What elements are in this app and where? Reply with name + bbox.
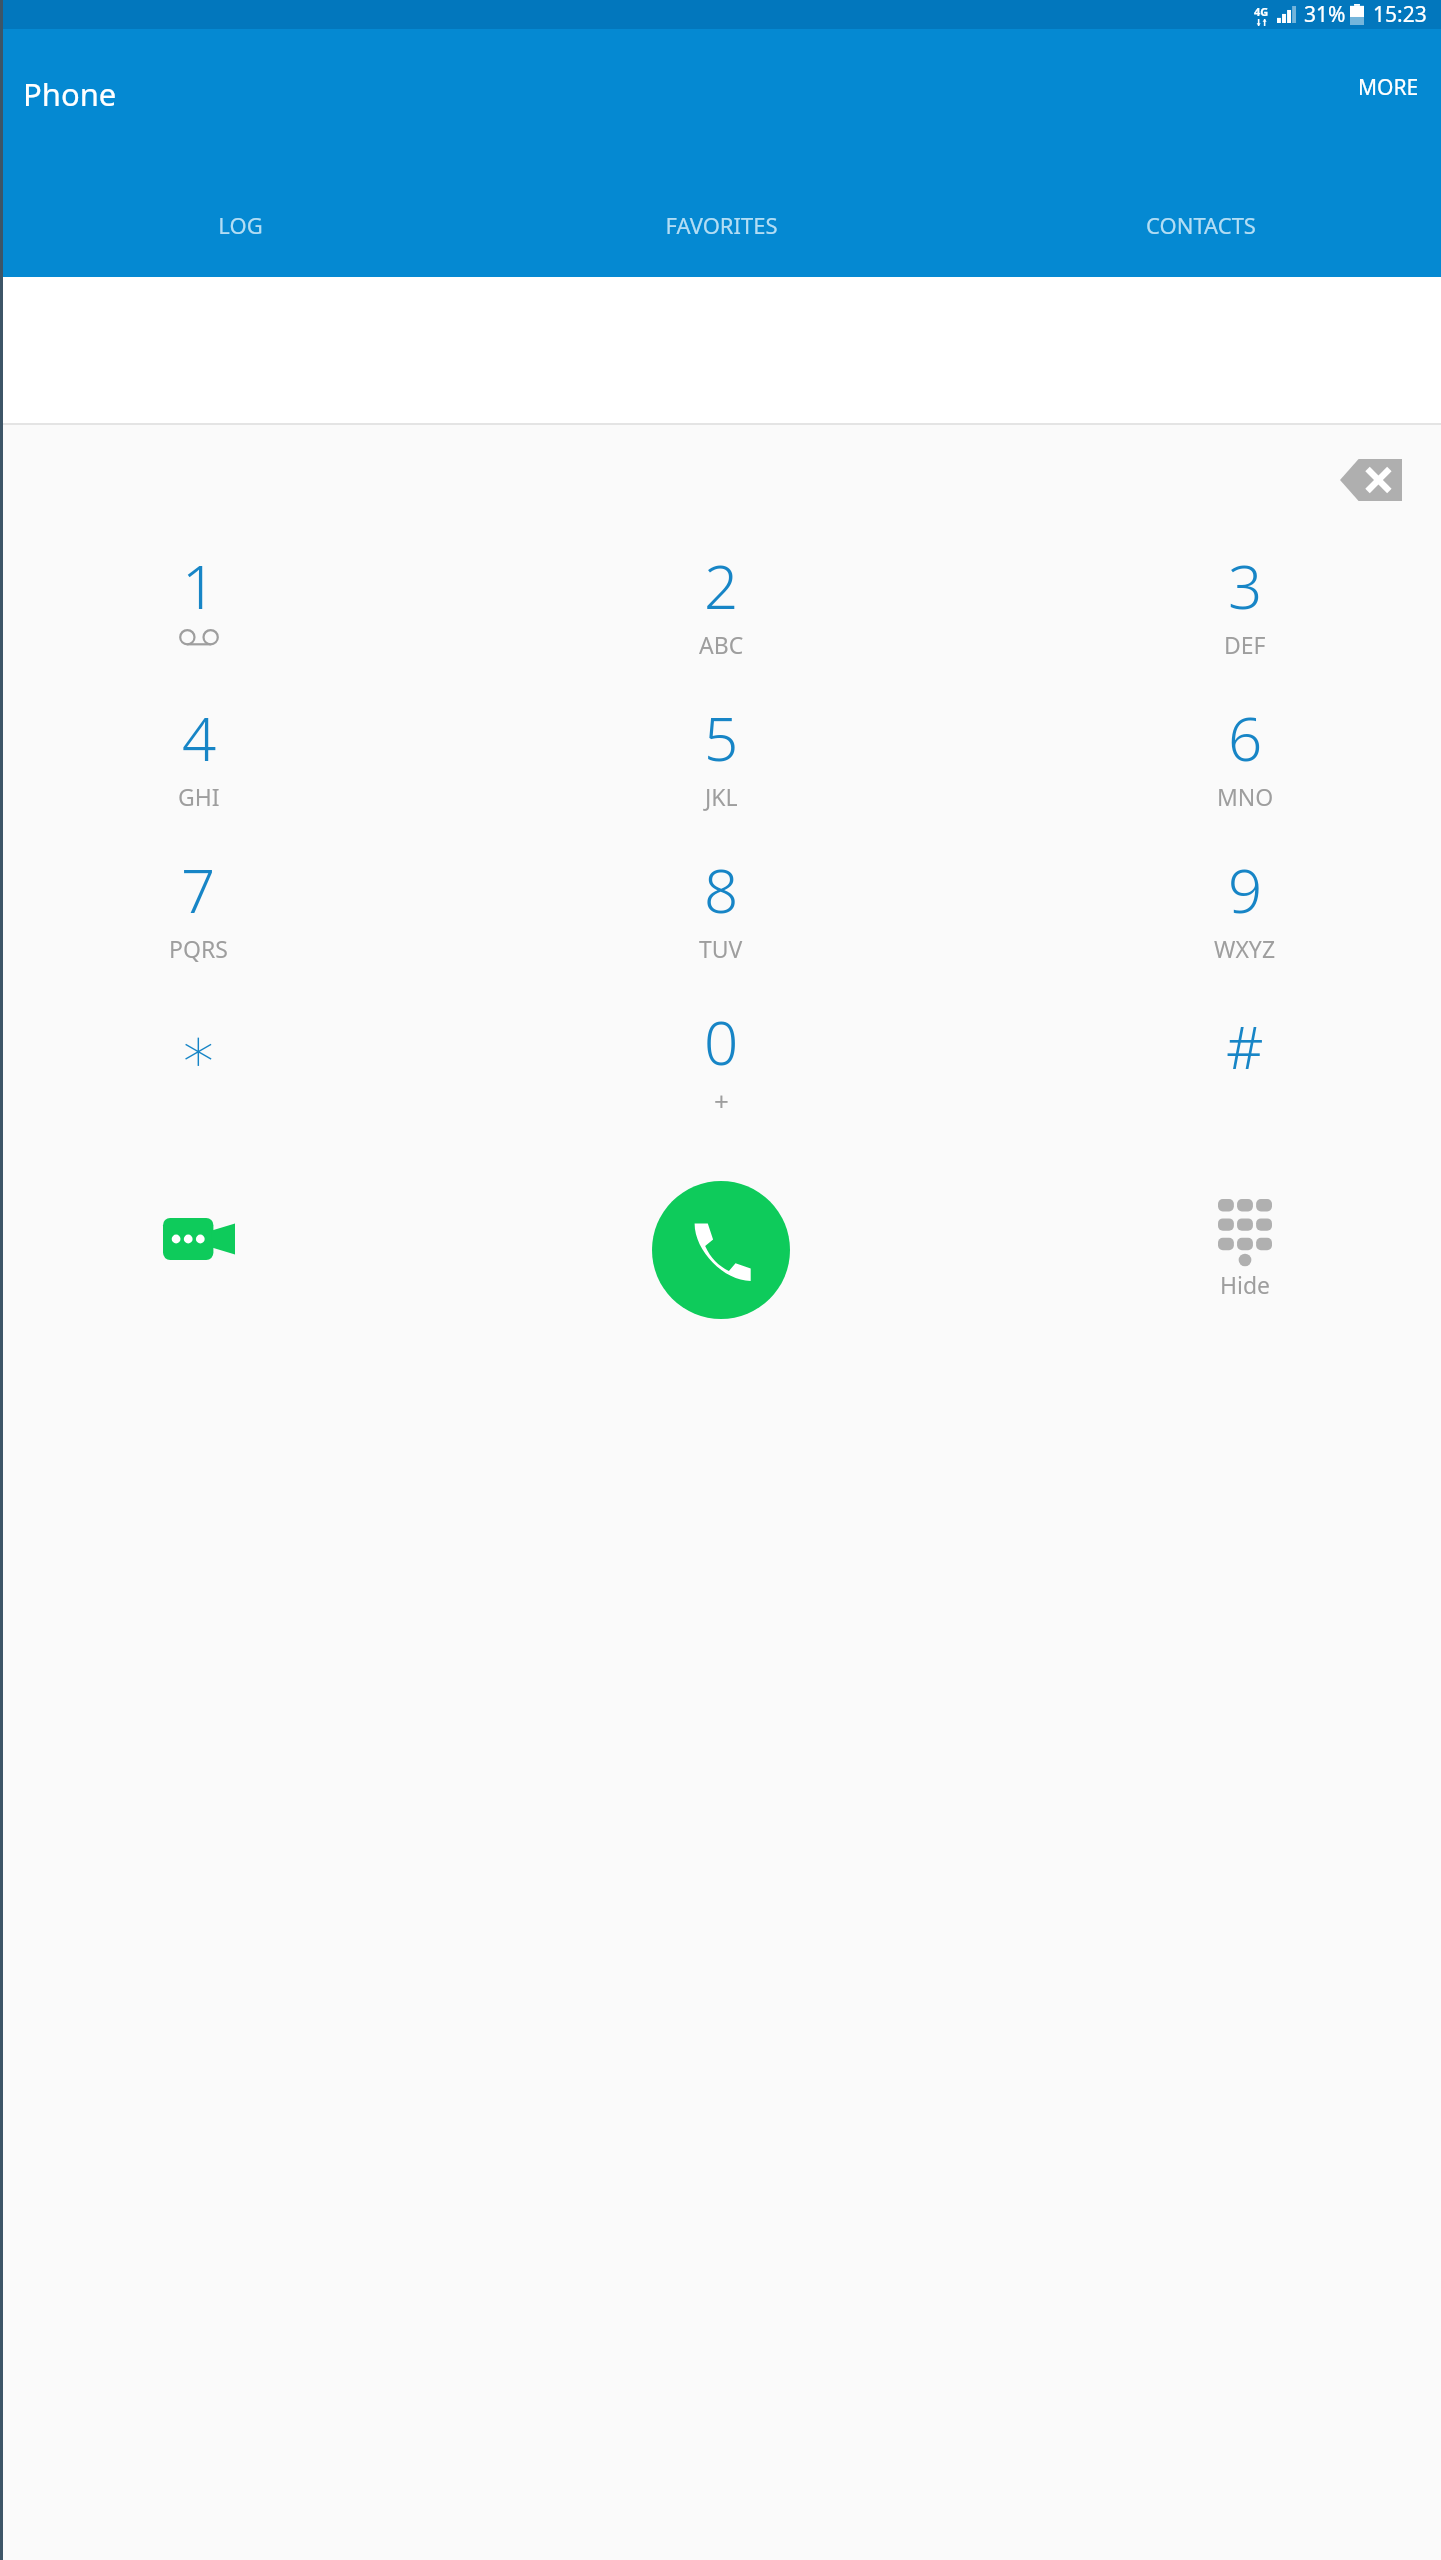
button[interactable]: 4 (0, 697, 481, 849)
button[interactable]: # (961, 1001, 1441, 1153)
staticText: LOG (218, 210, 263, 240)
staticText: 9 (1228, 849, 1263, 931)
button[interactable]: 6 (961, 697, 1441, 849)
button[interactable]: 9 (961, 849, 1441, 1001)
staticText: # (1226, 1007, 1264, 1086)
staticText: GHI (178, 781, 220, 812)
staticText: 6 (1228, 697, 1263, 779)
button[interactable]: MORE (1340, 59, 1441, 116)
staticText: 2 (704, 545, 739, 627)
staticText: MNO (1217, 781, 1274, 812)
staticText: TUV (699, 933, 743, 964)
button[interactable]: CONTACTS (961, 173, 1441, 277)
staticText: 5 (704, 697, 739, 779)
button[interactable]: 3 (961, 545, 1441, 697)
button[interactable]: Video call (159, 1211, 239, 1267)
button[interactable]: 5 (481, 697, 961, 849)
staticText: FAVORITES (665, 210, 778, 240)
staticText: PQRS (169, 933, 228, 964)
button[interactable]: Backspace (1323, 449, 1419, 511)
staticText: 31% (1304, 0, 1346, 29)
staticText: CONTACTS (1146, 210, 1256, 240)
staticText: Hide (1220, 1269, 1271, 1300)
staticText: 4 (182, 697, 217, 779)
staticText: ∗ (179, 1013, 218, 1085)
staticText: 8 (704, 849, 739, 931)
staticText: Phone (23, 73, 117, 115)
button[interactable]: 1 (0, 545, 481, 697)
staticText: DEF (1224, 629, 1266, 660)
button[interactable]: 7 (0, 849, 481, 1001)
staticText: + (714, 1083, 729, 1118)
staticText: JKL (705, 781, 738, 812)
button[interactable]: Hide (1198, 1193, 1292, 1306)
staticText: ABC (699, 629, 744, 660)
button[interactable]: 0 (481, 1001, 961, 1153)
staticText: 0 (704, 1001, 739, 1083)
staticText: 7 (181, 849, 216, 931)
button[interactable] (0, 277, 1441, 423)
button[interactable]: 8 (481, 849, 961, 1001)
staticText: 4G (1254, 4, 1269, 19)
button[interactable]: ∗ (0, 1001, 481, 1153)
staticText: 15:23 (1373, 0, 1427, 29)
staticText: 1 (182, 545, 217, 627)
button[interactable]: FAVORITES (481, 173, 961, 277)
button[interactable]: LOG (0, 173, 481, 277)
staticText: 3 (1228, 545, 1263, 627)
staticText: WXYZ (1214, 933, 1276, 964)
staticText: MORE (1358, 73, 1419, 102)
button[interactable]: 2 (481, 545, 961, 697)
button[interactable]: Call (652, 1181, 790, 1319)
